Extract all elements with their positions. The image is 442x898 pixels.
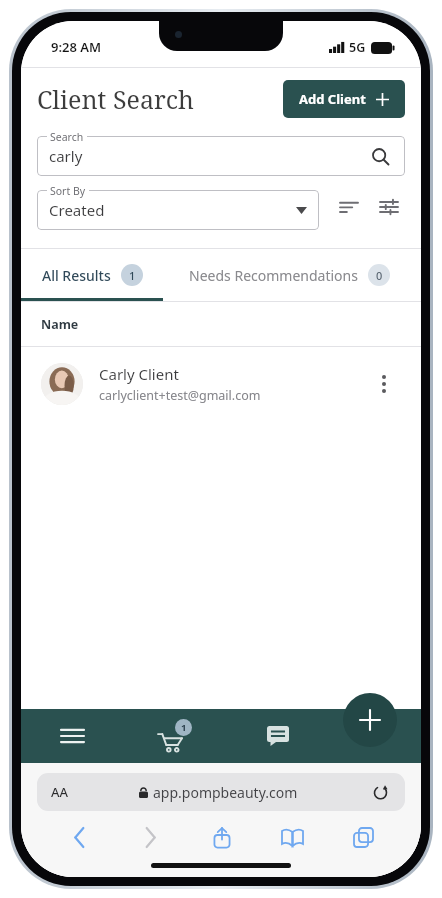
staticText: 5G bbox=[349, 39, 366, 56]
button[interactable]: Reload bbox=[369, 781, 391, 803]
button[interactable]: Tabs bbox=[328, 819, 399, 855]
button[interactable]: AA bbox=[37, 773, 405, 811]
staticText: Carly Client bbox=[99, 364, 179, 384]
button[interactable]: All Results bbox=[21, 249, 163, 301]
staticText: carlyclient+test@gmail.com bbox=[99, 387, 261, 404]
staticText: Needs Recommendations bbox=[189, 266, 358, 285]
button[interactable]: Created bbox=[37, 190, 319, 230]
button[interactable]: Share bbox=[186, 819, 257, 855]
staticText: 1 bbox=[129, 268, 136, 283]
button[interactable]: Add Client bbox=[283, 80, 405, 118]
button[interactable]: Back bbox=[43, 819, 115, 855]
staticText: Name bbox=[41, 316, 79, 333]
button[interactable]: Carly Client bbox=[21, 347, 421, 421]
button[interactable]: More options bbox=[367, 367, 401, 401]
button[interactable]: Sort order bbox=[333, 191, 365, 223]
staticText: 0 bbox=[376, 268, 383, 283]
button[interactable]: Forward bbox=[115, 819, 186, 855]
staticText: All Results bbox=[42, 266, 111, 285]
button[interactable]: Menu bbox=[21, 709, 123, 763]
button[interactable]: carly bbox=[37, 136, 405, 176]
button[interactable]: Needs Recommendations bbox=[163, 249, 421, 301]
staticText: AA bbox=[51, 783, 69, 801]
button[interactable]: Cart, 1 item bbox=[123, 709, 226, 763]
staticText: Created bbox=[49, 200, 105, 220]
staticText: carly bbox=[49, 146, 83, 166]
staticText: 9:28 AM bbox=[51, 38, 102, 56]
button[interactable]: Search bbox=[367, 143, 393, 169]
staticText: Search bbox=[50, 130, 84, 144]
button[interactable]: Bookmarks bbox=[257, 819, 328, 855]
staticText: app.pompbeauty.com bbox=[153, 783, 298, 802]
staticText: 1 bbox=[181, 721, 187, 734]
button[interactable]: Messages bbox=[226, 709, 329, 763]
staticText: Sort By bbox=[50, 184, 86, 198]
staticText: Add Client bbox=[299, 90, 366, 108]
button[interactable]: Add bbox=[343, 693, 397, 747]
staticText: Client Search bbox=[37, 82, 194, 116]
button[interactable]: Filters bbox=[373, 191, 405, 223]
